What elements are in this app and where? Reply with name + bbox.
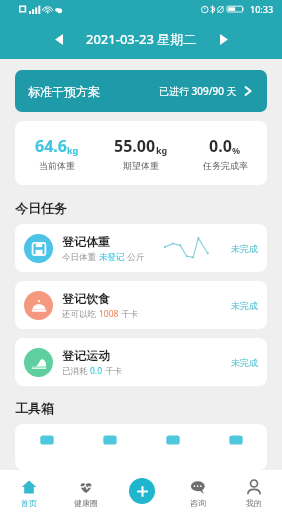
staticText: 未完成 — [224, 243, 258, 254]
button[interactable]: 55.00 — [99, 135, 183, 171]
button[interactable]: 我的 — [226, 470, 282, 517]
button[interactable]: 登记运动 — [15, 338, 267, 386]
staticText: 0.0 — [209, 135, 232, 157]
button[interactable]: 登记饮食 — [15, 281, 267, 329]
staticText: 未完成 — [224, 300, 258, 311]
staticText: 标准干预方案 — [28, 84, 100, 99]
staticText: 我的 — [246, 498, 262, 508]
staticText: 千卡 — [103, 365, 123, 377]
staticText: 已消耗 — [62, 365, 90, 377]
staticText: 健康圈 — [74, 498, 98, 508]
staticText: 登记饮食 — [62, 291, 110, 306]
button[interactable] — [15, 424, 78, 470]
staticText: 任务完成率 — [203, 160, 248, 171]
staticText: 期望体重 — [123, 160, 159, 171]
button[interactable]: Add record — [129, 478, 155, 504]
staticText: 0.0 — [90, 365, 103, 377]
staticText: 当前体重 — [39, 160, 75, 171]
staticText: 10:33 — [250, 3, 274, 15]
button[interactable]: 标准干预方案 — [15, 70, 267, 112]
staticText: 首页 — [21, 498, 37, 508]
staticText: 64.6 — [35, 135, 67, 157]
button[interactable] — [204, 424, 267, 470]
staticText: 已进行 309/90 天 — [159, 84, 237, 98]
button[interactable]: 登记体重 — [15, 224, 267, 272]
staticText: 今日任务 — [15, 200, 67, 216]
button[interactable]: 健康圈 — [57, 470, 114, 517]
staticText: kg — [67, 144, 79, 156]
staticText: 登记运动 — [62, 348, 110, 363]
staticText: 咨询 — [190, 498, 206, 508]
button[interactable] — [141, 424, 204, 470]
button[interactable]: Next day — [210, 26, 236, 52]
button[interactable]: 64.6 — [15, 135, 99, 171]
button[interactable]: 咨询 — [170, 470, 226, 517]
staticText: % — [232, 144, 241, 156]
staticText: 还可以吃 — [62, 308, 99, 320]
staticText: 今日体重 — [62, 251, 99, 263]
button[interactable] — [78, 424, 141, 470]
staticText: 2021-03-23 星期二 — [86, 30, 197, 48]
button[interactable]: 0.0 — [183, 135, 267, 171]
staticText: 1008 — [99, 308, 119, 320]
staticText: 未完成 — [224, 357, 258, 368]
staticText: 55.00 — [114, 135, 156, 157]
staticText: 未登记 — [99, 252, 125, 263]
button[interactable]: Previous day — [46, 26, 72, 52]
staticText: 公斤 — [125, 251, 145, 263]
staticText: 登记体重 — [62, 234, 110, 249]
staticText: 千卡 — [119, 308, 139, 320]
staticText: kg — [156, 144, 168, 156]
button[interactable]: 首页 — [0, 470, 57, 517]
staticText: 工具箱 — [15, 400, 54, 416]
